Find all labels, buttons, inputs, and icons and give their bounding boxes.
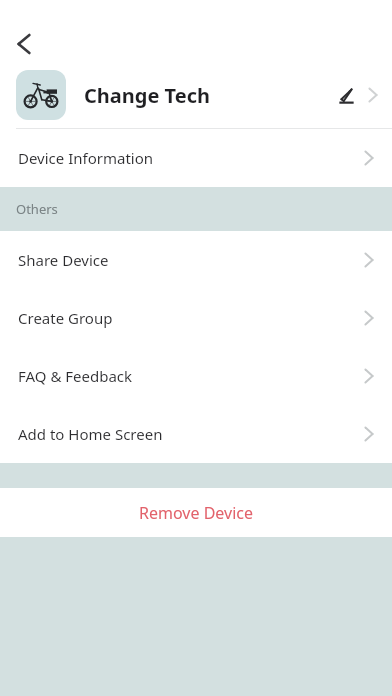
staticText: Change Tech xyxy=(84,82,210,109)
button[interactable]: FAQ & Feedback xyxy=(0,347,392,405)
button[interactable]: Remove Device xyxy=(0,488,392,537)
staticText: FAQ & Feedback xyxy=(18,366,133,386)
staticText: Share Device xyxy=(18,250,109,270)
button[interactable]: Change Tech xyxy=(0,62,392,128)
staticText: Others xyxy=(16,200,58,218)
staticText: Create Group xyxy=(18,308,113,328)
button[interactable]: Back xyxy=(6,26,42,62)
staticText: Add to Home Screen xyxy=(18,424,163,444)
staticText: Device Information xyxy=(18,148,154,168)
staticText: Remove Device xyxy=(139,502,253,524)
button[interactable]: Device Information xyxy=(0,129,392,187)
button[interactable]: Add to Home Screen xyxy=(0,405,392,463)
other: Edit name xyxy=(334,83,358,107)
button[interactable]: Create Group xyxy=(0,289,392,347)
button[interactable]: Share Device xyxy=(0,231,392,289)
